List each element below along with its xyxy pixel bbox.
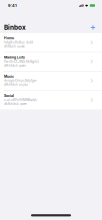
staticText: dhfdjsh uywe: [4, 44, 25, 48]
staticText: HwrDvCEJNDLKkNgrUJ: [4, 60, 39, 63]
button[interactable]: Music: [0, 71, 102, 90]
staticText: Music: [4, 74, 14, 79]
staticText: hdgfksfhdkjs dufd: [4, 40, 33, 44]
button[interactable]: Home: [0, 33, 102, 52]
staticText: 9:41: [8, 3, 17, 8]
staticText: Social: [4, 94, 14, 98]
button[interactable]: New: [89, 23, 97, 31]
staticText: Binbox: [4, 24, 26, 31]
staticText: Home: [4, 36, 14, 40]
staticText: Mailing Lists: [4, 55, 25, 59]
button[interactable]: Social: [0, 91, 102, 109]
staticText: dfkhfdsh asjdu: [4, 83, 28, 87]
staticText: AvngmChrrycBdyfgw: [4, 79, 37, 83]
staticText: dkfkhdsk qwer: [4, 102, 27, 106]
staticText: s-uLnKPoAVMNBqdjh: [4, 98, 37, 102]
button[interactable]: Mailing Lists: [0, 52, 102, 71]
staticText: dfkhfdsh qwer: [4, 64, 26, 67]
